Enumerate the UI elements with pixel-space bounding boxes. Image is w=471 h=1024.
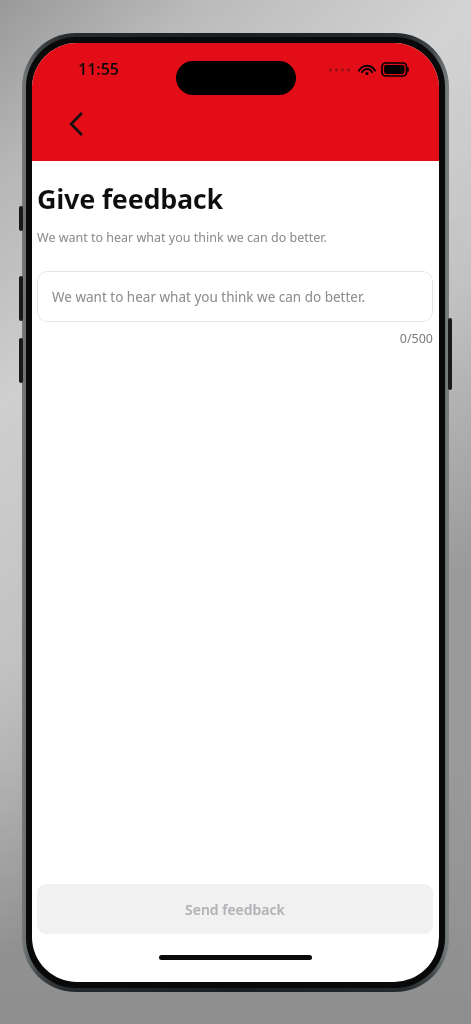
staticText: Send feedback [185,900,285,919]
staticText: 11:55 [78,58,120,80]
staticText: 0/500 [37,330,433,347]
staticText: We want to hear what you think we can do… [52,288,365,306]
staticText: Give feedback [37,180,223,217]
button[interactable]: Send feedback [37,884,433,934]
button[interactable]: Back [54,101,100,147]
button[interactable]: We want to hear what you think we can do… [37,271,433,322]
staticText: We want to hear what you think we can do… [37,229,327,246]
